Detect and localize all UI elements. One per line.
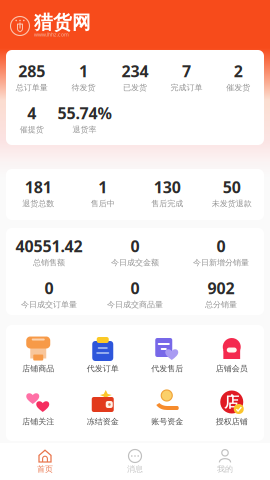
staticText: 902 [207, 277, 234, 299]
staticText: 未发货退款 [212, 199, 252, 208]
staticText: 冻结资金 [87, 417, 119, 426]
staticText: 今日成交商品量 [107, 300, 163, 309]
staticText: 售后中 [91, 199, 115, 208]
staticText: 退货总数 [22, 199, 54, 208]
staticText: 285 [18, 60, 45, 82]
staticText: 1 [79, 60, 88, 82]
staticText: 账号资金 [151, 417, 183, 426]
staticText: 总订单量 [16, 83, 48, 92]
staticText: 2 [234, 60, 243, 82]
staticText: 总销售额 [33, 258, 65, 267]
staticText: 授权店铺 [216, 417, 248, 426]
staticText: 50 [223, 176, 241, 198]
staticText: 完成订单 [171, 83, 203, 92]
staticText: 已发货 [123, 83, 147, 92]
staticText: 店铺会员 [216, 364, 248, 373]
staticText: 今日成交金额 [111, 258, 159, 267]
button[interactable]: 店铺商品 [6, 337, 70, 376]
staticText: 猎货网 [34, 11, 91, 34]
staticText: 181 [25, 176, 52, 198]
button[interactable]: 店铺关注 [6, 390, 70, 429]
button[interactable]: 店铺会员 [199, 337, 264, 376]
staticText: 130 [154, 176, 181, 198]
staticText: 代发订单 [87, 364, 119, 373]
staticText: 店铺商品 [22, 364, 54, 373]
staticText: 代发售后 [151, 364, 183, 373]
staticText: 7 [182, 60, 191, 82]
staticText: 待发货 [71, 83, 95, 92]
button[interactable]: 冻结资金 [70, 390, 135, 429]
staticText: 首页 [37, 464, 53, 474]
staticText: 0 [44, 277, 53, 299]
staticText: 总分销量 [205, 300, 237, 309]
staticText: 退货率 [73, 125, 97, 134]
staticText: 40551.42 [15, 235, 82, 257]
button[interactable]: 我的 [180, 449, 270, 475]
staticText: 1 [98, 176, 107, 198]
staticText: 0 [130, 235, 139, 257]
button[interactable]: 代发订单 [70, 337, 135, 376]
staticText: 售后完成 [151, 199, 183, 208]
button[interactable]: 消息 [90, 449, 180, 475]
staticText: 今日新增分销量 [193, 258, 249, 267]
staticText: 我的 [217, 464, 233, 474]
staticText: 4 [27, 102, 36, 124]
staticText: www.lhhz.com [34, 31, 69, 38]
staticText: 234 [121, 60, 148, 82]
staticText: 店 [224, 393, 239, 411]
button[interactable]: 代发售后 [135, 337, 199, 376]
button[interactable]: 店 [199, 390, 264, 429]
staticText: 55.74% [58, 102, 112, 124]
staticText: 0 [216, 235, 225, 257]
staticText: 0 [130, 277, 139, 299]
staticText: 催提货 [20, 125, 44, 134]
button[interactable]: 账号资金 [135, 390, 199, 429]
staticText: 今日成交订单量 [21, 300, 77, 309]
staticText: 店铺关注 [22, 417, 54, 426]
button[interactable]: 首页 [0, 449, 90, 475]
staticText: 催发货 [226, 83, 250, 92]
staticText: 消息 [127, 464, 143, 474]
